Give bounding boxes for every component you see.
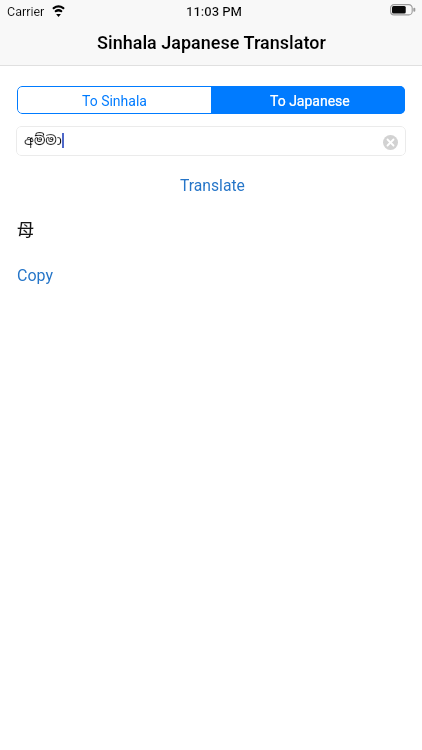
button[interactable]: To Sinhala — [17, 86, 211, 114]
staticText: 11:03 PM — [186, 4, 242, 19]
staticText: අම්මා — [24, 131, 62, 149]
staticText: To Japanese — [270, 93, 350, 109]
staticText: Copy — [17, 266, 53, 285]
staticText: Sinhala Japanese Translator — [97, 32, 326, 53]
button[interactable]: Clear text — [383, 135, 398, 150]
button[interactable]: To Japanese — [211, 86, 405, 114]
staticText: 母 — [17, 216, 34, 241]
button[interactable]: Translate — [0, 175, 422, 196]
other: Wi-Fi signal — [51, 6, 66, 18]
button[interactable]: Copy — [17, 266, 53, 285]
staticText: Carrier — [7, 4, 45, 19]
staticText: To Sinhala — [82, 93, 147, 109]
other: Battery — [390, 4, 415, 16]
staticText: Translate — [180, 176, 245, 194]
button[interactable]: අම්මා — [16, 126, 406, 156]
